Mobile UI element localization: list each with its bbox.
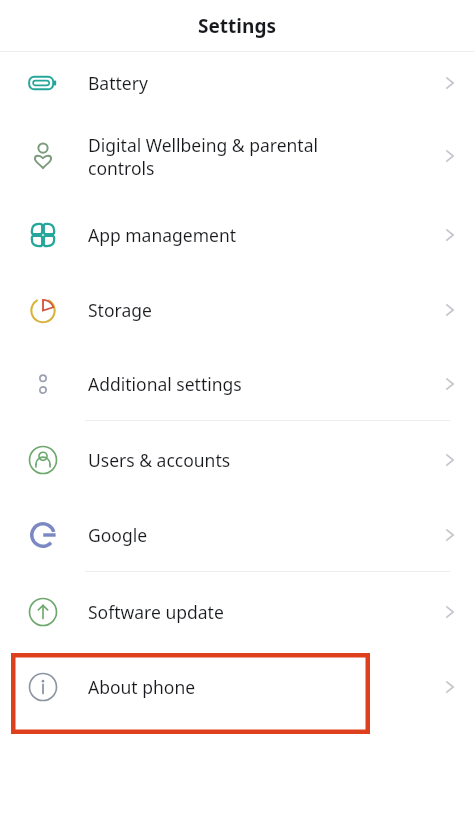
button[interactable]: About phone <box>0 652 474 722</box>
staticText: Settings <box>198 13 276 39</box>
staticText: App management <box>88 223 426 247</box>
button[interactable]: Additional settings <box>0 347 474 420</box>
button[interactable]: Storage <box>0 272 474 347</box>
staticText: Storage <box>88 298 426 322</box>
button[interactable]: Software update <box>0 572 474 652</box>
staticText: Software update <box>88 600 426 624</box>
staticText: Users & accounts <box>88 448 426 472</box>
staticText: Additional settings <box>88 372 426 396</box>
button[interactable]: Digital Wellbeing & parental controls <box>0 114 474 198</box>
button[interactable]: App management <box>0 198 474 272</box>
staticText: About phone <box>88 675 426 699</box>
button[interactable]: Users & accounts <box>0 421 474 498</box>
staticText: Google <box>88 523 426 547</box>
button[interactable]: Google <box>0 498 474 571</box>
button[interactable]: Battery <box>0 52 474 114</box>
staticText: Battery <box>88 71 426 95</box>
staticText: Digital Wellbeing & parental controls <box>88 133 426 180</box>
